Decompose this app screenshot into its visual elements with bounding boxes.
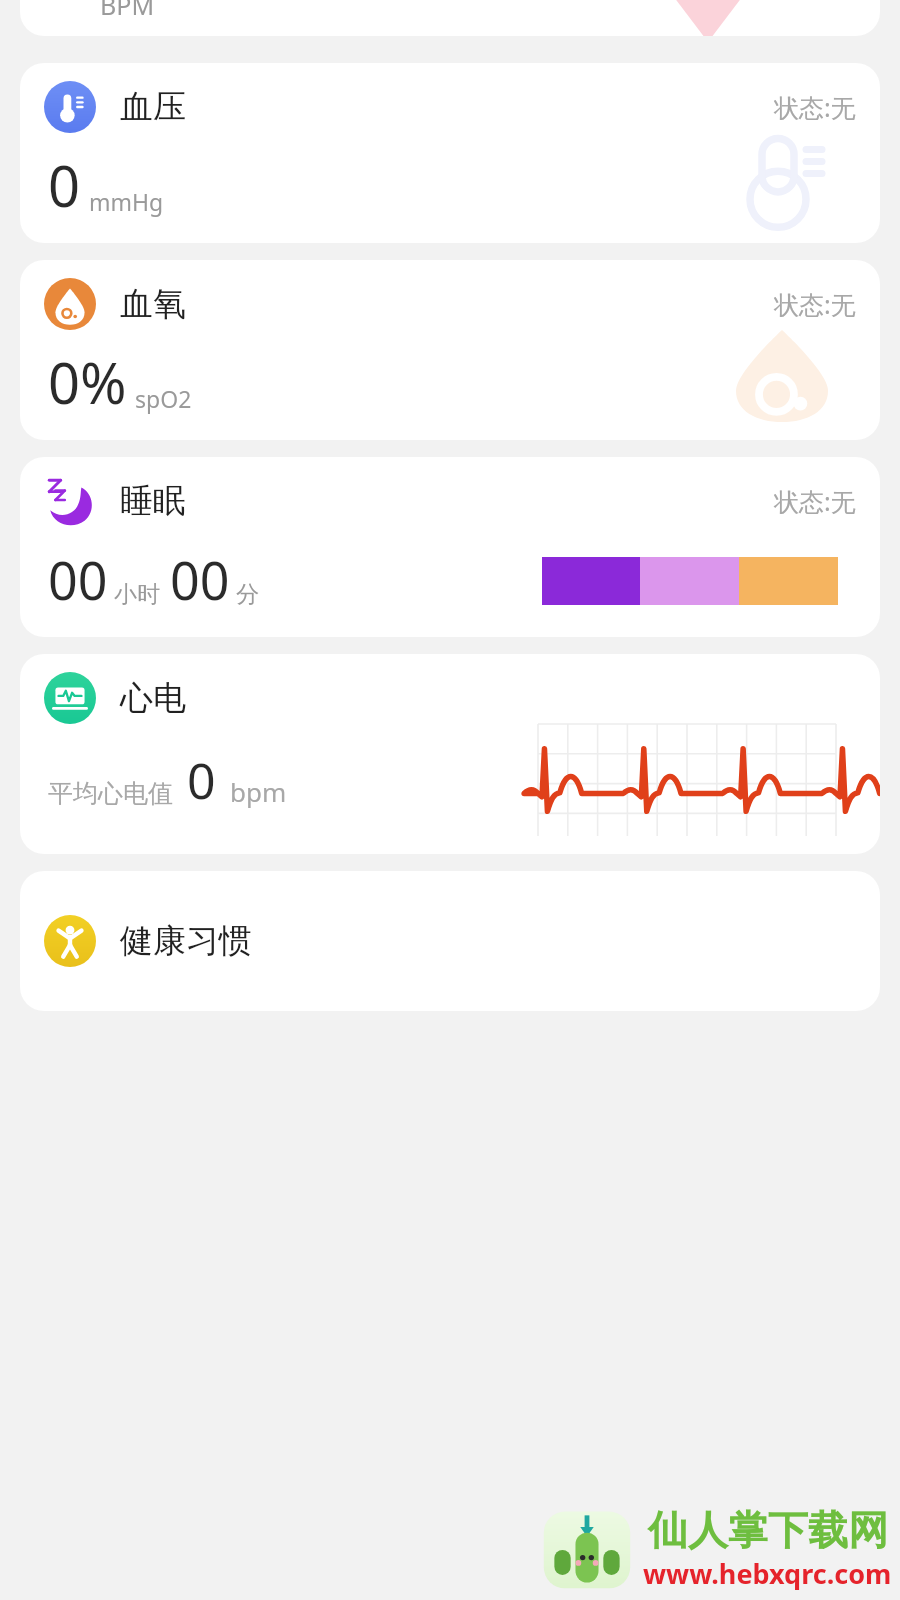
staticText: 仙人掌下载网	[648, 1505, 888, 1555]
staticText: 0	[187, 746, 216, 814]
staticText: 小时	[114, 580, 160, 609]
staticText: 血氧	[120, 283, 186, 325]
staticText: 平均心电值	[48, 778, 173, 809]
staticText: www.hebxqrc.com	[643, 1555, 892, 1592]
staticText: 状态:无	[774, 90, 856, 124]
button[interactable]: 血氧	[20, 260, 880, 440]
staticText: 健康习惯	[120, 920, 252, 962]
staticText: spO2	[135, 383, 192, 414]
staticText: 0%	[48, 344, 127, 420]
staticText: mmHg	[89, 186, 164, 217]
button[interactable]: BPM	[20, 0, 880, 36]
staticText: 状态:无	[774, 287, 856, 321]
staticText: 00	[170, 544, 230, 615]
staticText: 血压	[120, 86, 186, 128]
button[interactable]: 睡眠	[20, 457, 880, 637]
staticText: 睡眠	[120, 480, 186, 522]
button[interactable]: 健康习惯	[20, 871, 880, 1011]
staticText: 状态:无	[774, 484, 856, 518]
button[interactable]: 血压	[20, 63, 880, 243]
staticText: 0	[48, 147, 81, 223]
staticText: 心电	[120, 677, 186, 719]
staticText: BPM	[100, 0, 155, 22]
staticText: 00	[48, 544, 108, 615]
staticText: 分	[236, 580, 259, 609]
button[interactable]: 心电	[20, 654, 880, 854]
staticText: bpm	[230, 774, 287, 809]
